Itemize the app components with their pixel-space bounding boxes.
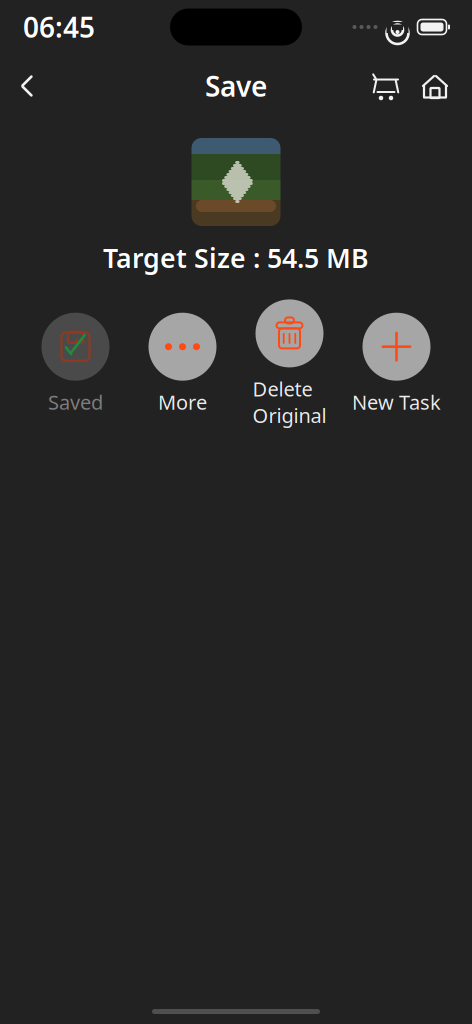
staticText: New Task	[352, 389, 441, 415]
button[interactable]: Delete Original	[236, 299, 343, 428]
button[interactable]: Cart	[360, 62, 410, 110]
staticText: Saved	[48, 389, 103, 415]
staticText: Delete Original	[252, 375, 326, 428]
staticText: 06:45	[23, 8, 95, 46]
button[interactable]: Saved	[22, 313, 129, 415]
button[interactable]: More	[129, 313, 236, 415]
staticText: Target Size : 54.5 MB	[103, 240, 369, 275]
button[interactable]: Back	[0, 62, 54, 110]
button[interactable]: New Task	[343, 313, 450, 415]
button[interactable]: Home	[410, 62, 460, 110]
staticText: Save	[205, 67, 267, 105]
staticText: More	[158, 389, 207, 415]
